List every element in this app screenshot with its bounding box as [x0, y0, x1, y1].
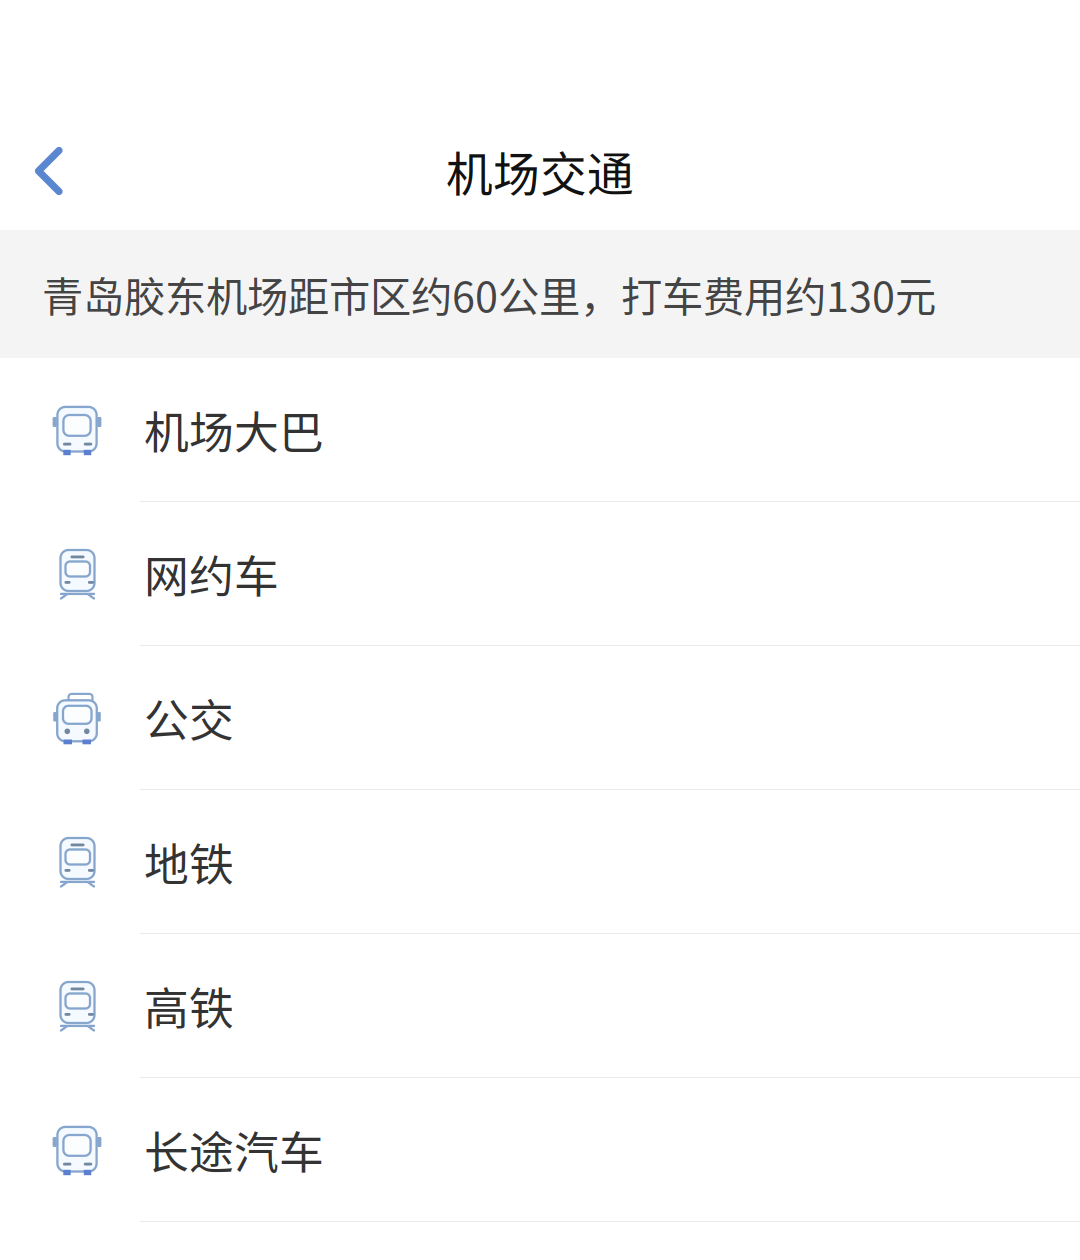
staticText: 青岛胶东机场距市区约60公里，打车费用约130元 — [42, 264, 936, 324]
button[interactable]: 公交 — [0, 646, 1080, 790]
button[interactable]: 网约车 — [0, 502, 1080, 646]
button[interactable]: 长途汽车 — [0, 1078, 1080, 1222]
staticText: 地铁 — [144, 829, 234, 894]
button[interactable]: 高铁 — [0, 934, 1080, 1078]
staticText: 机场交通 — [446, 137, 634, 205]
staticText: 高铁 — [144, 973, 234, 1038]
staticText: 公交 — [144, 685, 234, 750]
staticText: 网约车 — [144, 541, 279, 606]
button[interactable]: 地铁 — [0, 790, 1080, 934]
button[interactable]: 机场大巴 — [0, 358, 1080, 502]
button[interactable]: Back — [0, 112, 98, 230]
staticText: 长途汽车 — [144, 1117, 324, 1182]
staticText: 机场大巴 — [144, 397, 324, 462]
